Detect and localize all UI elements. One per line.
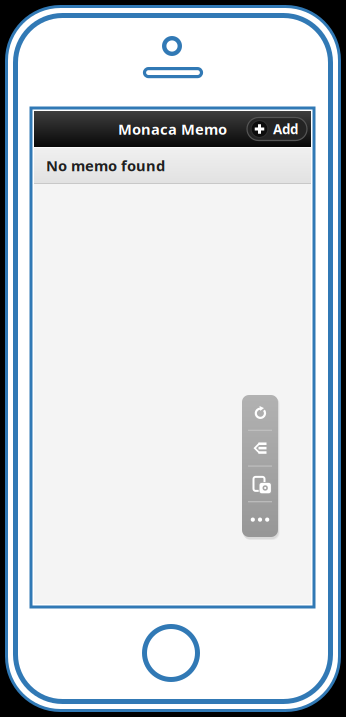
- button[interactable]: Screenshot: [242, 466, 278, 501]
- button[interactable]: More: [242, 502, 278, 537]
- button[interactable]: Add: [247, 117, 307, 140]
- staticText: Add: [273, 120, 298, 138]
- button[interactable]: Reload: [242, 395, 278, 430]
- staticText: No memo found: [46, 156, 165, 175]
- button[interactable]: Console: [242, 431, 278, 466]
- staticText: Monaca Memo: [118, 119, 227, 139]
